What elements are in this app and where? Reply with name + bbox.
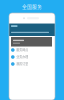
button[interactable]: 业务办理 (9, 53, 55, 60)
button[interactable]: 全国服务 (4, 0, 59, 13)
staticText: 业务办理 (16, 55, 28, 59)
staticText: 服务网点 (16, 48, 28, 52)
staticText: 我的订单 (16, 62, 28, 66)
staticText: 全国服务 (22, 3, 42, 10)
button[interactable]: 我的订单 (9, 60, 55, 67)
button[interactable]: 服务网点 (9, 46, 55, 53)
